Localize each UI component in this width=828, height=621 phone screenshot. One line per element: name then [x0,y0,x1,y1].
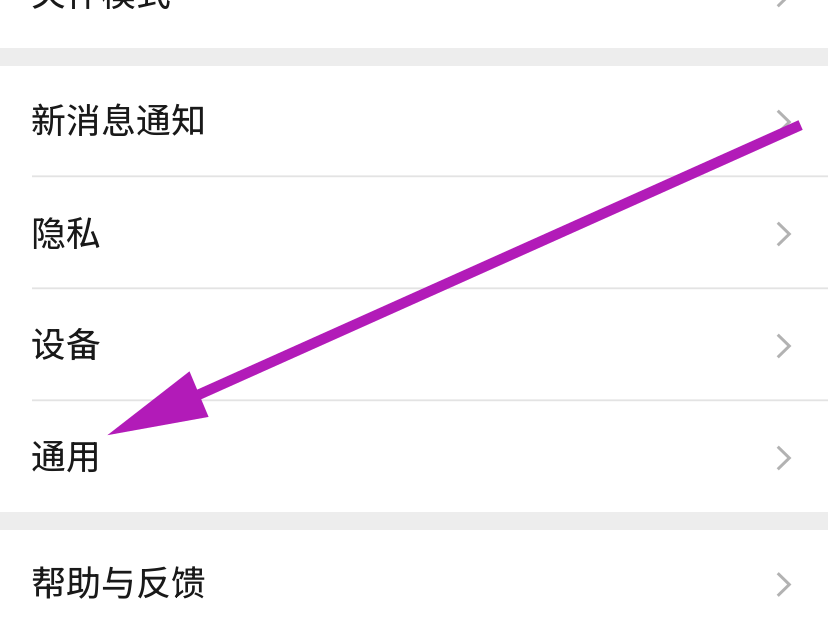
button[interactable]: 新消息通知 [0,66,828,176]
staticText: 新消息通知 [31,93,206,143]
staticText: 设备 [31,317,101,367]
button[interactable]: 设备 [0,288,828,400]
button[interactable]: 隐私 [0,176,828,288]
staticText: 隐私 [31,206,101,256]
button[interactable]: 关怀模式 [0,0,828,48]
staticText: 关怀模式 [31,0,171,16]
button[interactable]: 帮助与反馈 [0,530,828,621]
staticText: 通用 [31,429,101,479]
staticText: 帮助与反馈 [31,555,206,606]
button[interactable]: 通用 [0,400,828,512]
